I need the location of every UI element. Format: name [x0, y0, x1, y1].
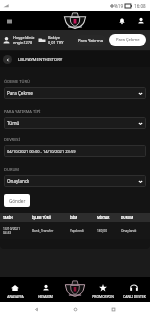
staticText: DURUM [4, 167, 20, 172]
staticText: Hoşgeldiniz [13, 35, 35, 40]
staticText: %19 [114, 3, 124, 9]
button[interactable]: Back [3, 55, 12, 64]
button[interactable]: Onaylandı [4, 175, 146, 187]
button[interactable]: HESABIM [30, 280, 61, 299]
staticText: Para Çekme [116, 37, 140, 43]
staticText: PARA YATIRMA TİPİ [4, 109, 41, 114]
button[interactable]: PROMOSYON [87, 280, 118, 299]
button[interactable]: Para Çekme [109, 34, 146, 46]
staticText: Bank_Transfer [32, 229, 70, 233]
staticText: 13/10/2021 04:33 [3, 227, 32, 235]
button[interactable]: 04/10/2021 00:00 - 14/10/2021 23:59 [4, 145, 146, 157]
staticText: DEVRESİ [4, 137, 20, 142]
staticText: Yapıkredi [70, 229, 97, 233]
staticText: MİKTAR [97, 216, 121, 220]
staticText: Para Yatırma [78, 38, 104, 44]
staticText: ANASAYFA [7, 294, 24, 299]
staticText: CANLI DESTEK [123, 294, 146, 299]
staticText: Bakiye [48, 35, 60, 40]
button[interactable]: Para Çekme [4, 87, 146, 99]
staticText: engin1278 [13, 40, 33, 45]
staticText: Tümü [7, 120, 20, 126]
button[interactable]: Gönder [4, 194, 30, 207]
button[interactable]: Para Yatırma [76, 35, 106, 46]
staticText: Para Çekme [7, 90, 33, 96]
button[interactable]: Menu [4, 16, 14, 26]
staticText: İSİM [70, 216, 97, 220]
staticText: TARİH [3, 216, 32, 220]
button[interactable]: Tümü [4, 117, 146, 129]
staticText: 0,01 TRY [48, 40, 64, 45]
button[interactable]: CANLI DESTEK [118, 280, 150, 299]
staticText: Onaylandı [121, 229, 148, 233]
button[interactable]: Profile [135, 15, 146, 26]
staticText: DURUM [121, 216, 148, 220]
staticText: Gönder [9, 198, 26, 204]
staticText: 180,00 [97, 229, 121, 233]
staticText: PROMOSYON [92, 294, 114, 299]
staticText: İŞLEM TÜRÜ [32, 216, 70, 220]
button[interactable]: ANASAYFA [0, 280, 30, 299]
staticText: HESABIM [38, 294, 53, 299]
staticText: ÖDEME TÜRÜ [4, 79, 30, 84]
staticText: 16:08 [134, 3, 146, 9]
button[interactable]: Notifications [116, 15, 127, 26]
staticText: LBLPAYMENTHISTORY [18, 56, 63, 62]
staticText: 04/10/2021 00:00 - 14/10/2021 23:59 [7, 149, 76, 154]
staticText: Onaylandı [7, 178, 29, 184]
